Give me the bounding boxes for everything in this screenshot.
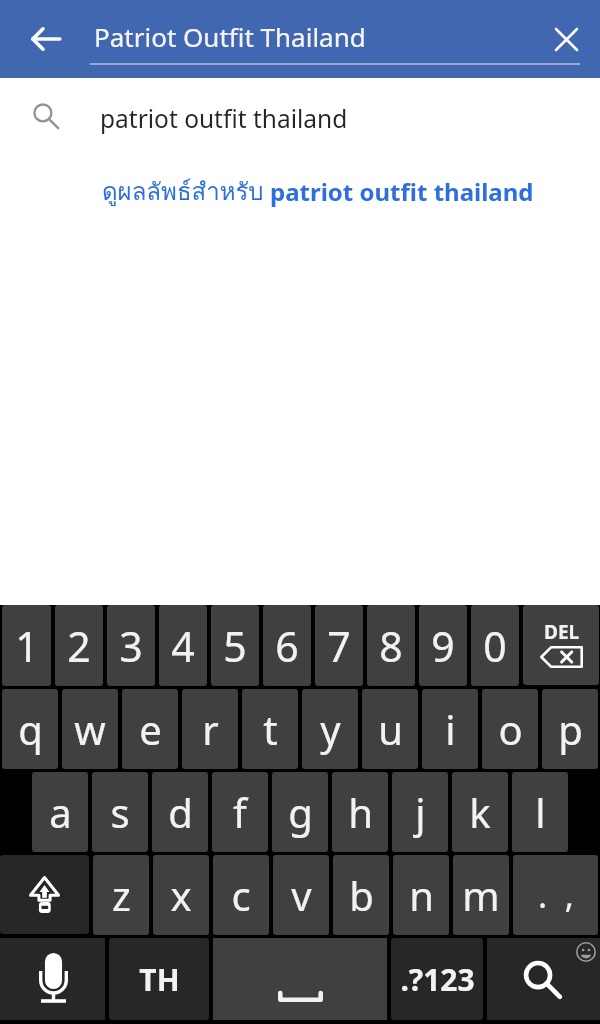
button[interactable]: v xyxy=(273,855,329,935)
staticText: 6 xyxy=(275,618,299,674)
staticText: t xyxy=(263,702,278,756)
button[interactable]: z xyxy=(93,855,149,935)
button[interactable]: Space xyxy=(213,938,387,1020)
button[interactable]: Delete xyxy=(523,605,599,685)
button[interactable]: 8 xyxy=(367,605,415,686)
staticText: e xyxy=(139,702,162,756)
staticText: x xyxy=(170,868,192,922)
staticText: m xyxy=(462,868,500,922)
staticText: 2 xyxy=(67,618,91,674)
staticText: z xyxy=(112,868,131,922)
button[interactable]: patriot outfit thailand xyxy=(0,78,600,158)
staticText: a xyxy=(49,785,72,839)
staticText: l xyxy=(535,785,546,839)
staticText: o xyxy=(498,702,523,756)
staticText: u xyxy=(378,702,403,756)
button[interactable]: Search xyxy=(487,938,600,1020)
staticText: k xyxy=(469,785,491,839)
button[interactable]: s xyxy=(92,772,148,852)
staticText: w xyxy=(74,702,106,756)
button[interactable]: ดูผลลัพธ์สำหรับ xyxy=(0,158,600,224)
button[interactable]: r xyxy=(182,689,238,769)
staticText: patriot outfit thailand xyxy=(100,102,348,135)
button[interactable]: 2 xyxy=(55,605,103,686)
button[interactable]: m xyxy=(453,855,509,935)
button[interactable]: l xyxy=(512,772,568,852)
button[interactable]: Back xyxy=(0,0,92,78)
staticText: Patriot Outfit Thailand xyxy=(94,19,366,54)
staticText: d xyxy=(168,785,193,839)
button[interactable]: 6 xyxy=(263,605,311,686)
staticText: DEL xyxy=(544,619,580,645)
button[interactable]: Shift xyxy=(0,855,89,934)
staticText: TH xyxy=(139,959,180,1000)
staticText: ดูผลลัพธ์สำหรับ xyxy=(102,172,270,210)
staticText: y xyxy=(320,702,341,756)
staticText: patriot outfit thailand xyxy=(270,175,534,208)
button[interactable]: d xyxy=(152,772,208,852)
button[interactable]: .?123 xyxy=(391,938,483,1020)
staticText: c xyxy=(231,868,251,922)
staticText: 4 xyxy=(171,618,195,674)
staticText: 3 xyxy=(119,618,143,674)
button[interactable]: t xyxy=(242,689,298,769)
button[interactable]: q xyxy=(2,689,58,769)
button[interactable]: Voice input xyxy=(0,938,105,1020)
button[interactable]: i xyxy=(422,689,478,769)
button[interactable]: o xyxy=(482,689,538,769)
button[interactable]: 5 xyxy=(211,605,259,686)
button[interactable]: k xyxy=(452,772,508,852)
button[interactable]: 4 xyxy=(159,605,207,686)
button[interactable]: b xyxy=(333,855,389,935)
button[interactable]: 0 xyxy=(471,605,519,686)
button[interactable]: g xyxy=(272,772,328,852)
staticText: .?123 xyxy=(400,959,475,1000)
staticText: 8 xyxy=(379,618,403,674)
staticText: 1 xyxy=(15,618,39,674)
staticText: b xyxy=(349,868,374,922)
staticText: s xyxy=(110,785,130,839)
staticText: v xyxy=(291,868,312,922)
button[interactable]: n xyxy=(393,855,449,935)
button[interactable]: c xyxy=(213,855,269,935)
button[interactable]: 1 xyxy=(2,605,51,686)
button[interactable]: . , xyxy=(513,855,598,935)
staticText: 0 xyxy=(483,618,507,674)
staticText: r xyxy=(202,702,219,756)
staticText: f xyxy=(233,785,247,839)
button[interactable]: y xyxy=(302,689,358,769)
button[interactable]: 3 xyxy=(107,605,155,686)
staticText: 7 xyxy=(327,618,351,674)
staticText: h xyxy=(348,785,373,839)
button[interactable]: 9 xyxy=(419,605,467,686)
button[interactable]: w xyxy=(62,689,118,769)
button[interactable]: Clear search xyxy=(532,0,600,78)
staticText: q xyxy=(18,702,43,756)
button[interactable]: h xyxy=(332,772,388,852)
staticText: n xyxy=(409,868,434,922)
staticText: i xyxy=(445,702,456,756)
button[interactable]: j xyxy=(392,772,448,852)
button[interactable]: TH xyxy=(109,938,209,1020)
button[interactable]: p xyxy=(542,689,598,769)
staticText: 9 xyxy=(431,618,455,674)
staticText: 5 xyxy=(223,618,247,674)
staticText: g xyxy=(288,785,313,839)
button[interactable]: f xyxy=(212,772,268,852)
button[interactable]: a xyxy=(32,772,88,852)
button[interactable]: 7 xyxy=(315,605,363,686)
staticText: j xyxy=(415,785,426,839)
button[interactable]: u xyxy=(362,689,418,769)
staticText: . , xyxy=(538,872,574,918)
staticText: p xyxy=(558,702,583,756)
button[interactable]: e xyxy=(122,689,178,769)
button[interactable]: x xyxy=(153,855,209,935)
